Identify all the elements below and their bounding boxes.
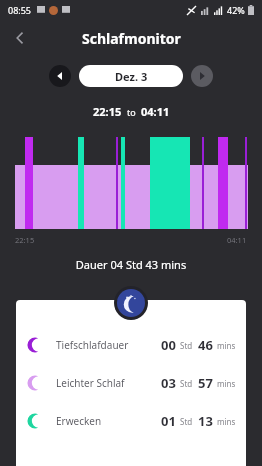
staticText: Schlafmonitor <box>82 29 181 48</box>
staticText: Std <box>180 340 193 351</box>
staticText: 01 <box>161 412 176 430</box>
staticText: 22:15 <box>93 104 122 119</box>
staticText: mins <box>217 378 236 389</box>
staticText: Std <box>180 416 193 427</box>
staticText: 04:11 <box>227 235 247 245</box>
staticText: 57 <box>198 374 213 392</box>
button[interactable]: Back <box>6 24 34 52</box>
button[interactable]: Next day <box>191 65 213 87</box>
staticText: 08:55 <box>8 4 32 16</box>
staticText: mins <box>217 416 236 427</box>
staticText: to <box>127 106 136 118</box>
staticText: Erwecken <box>56 414 102 428</box>
staticText: Leichter Schlaf <box>56 376 125 390</box>
button[interactable]: Previous day <box>49 65 71 87</box>
staticText: 03 <box>161 374 176 392</box>
staticText: Std <box>180 378 193 389</box>
staticText: 13 <box>198 412 213 430</box>
button[interactable]: Tiefschlafdauer <box>16 326 246 364</box>
staticText: 22:15 <box>15 235 35 245</box>
staticText: 42% <box>227 4 245 16</box>
staticText: Dauer 04 Std 43 mins <box>0 257 262 272</box>
button[interactable]: Dez. 3 <box>79 65 183 87</box>
staticText: 00 <box>161 336 176 354</box>
button[interactable]: Sleep <box>114 286 148 320</box>
staticText: mins <box>217 340 236 351</box>
staticText: Dez. 3 <box>115 69 148 84</box>
button[interactable]: Leichter Schlaf <box>16 364 246 402</box>
button[interactable]: Erwecken <box>16 402 246 440</box>
staticText: Tiefschlafdauer <box>56 338 129 352</box>
staticText: 46 <box>198 336 213 354</box>
staticText: 04:11 <box>141 104 170 119</box>
